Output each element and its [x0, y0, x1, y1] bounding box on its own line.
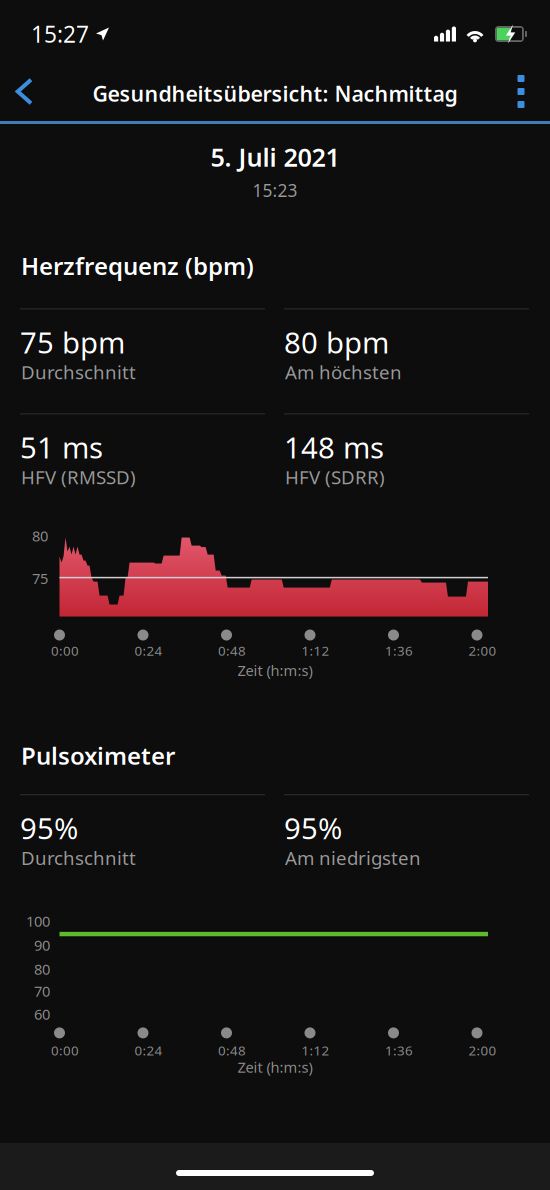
staticText: Herzfrequenz (bpm) [21, 250, 254, 282]
staticText: 0:00 [51, 1042, 79, 1059]
staticText: 1:12 [301, 1042, 329, 1059]
staticText: 15:23 [252, 179, 297, 202]
staticText: 100 [26, 911, 50, 931]
staticText: 80 bpm [284, 322, 389, 361]
staticText: Zeit (h:m:s) [237, 1057, 312, 1077]
staticText: 2:00 [468, 642, 496, 659]
staticText: 1:36 [385, 1042, 413, 1059]
staticText: Durchschnitt [21, 845, 136, 870]
staticText: 1:12 [301, 642, 329, 659]
staticText: 15:27 [31, 19, 89, 49]
staticText: 0:24 [134, 642, 162, 659]
staticText: 75 bpm [20, 322, 125, 361]
staticText: 5. Juli 2021 [210, 140, 339, 174]
staticText: 0:48 [218, 642, 246, 659]
staticText: 0:24 [134, 1042, 162, 1059]
staticText: 0:00 [51, 642, 79, 659]
staticText: 80 [32, 526, 48, 545]
staticText: Gesundheitsübersicht: Nachmittag [92, 79, 457, 108]
staticText: Pulsoximeter [21, 739, 175, 771]
staticText: 148 ms [284, 427, 384, 466]
staticText: Durchschnitt [21, 359, 136, 384]
staticText: Zeit (h:m:s) [237, 660, 312, 680]
button[interactable]: Zurück [0, 62, 53, 121]
staticText: 95% [20, 808, 78, 847]
staticText: 90 [34, 935, 50, 955]
staticText: 60 [34, 1004, 50, 1024]
staticText: 80 [34, 959, 50, 979]
staticText: Am niedrigsten [285, 845, 421, 870]
staticText: 75 [32, 568, 48, 588]
staticText: 0:48 [218, 1042, 246, 1059]
staticText: Am höchsten [285, 359, 402, 384]
staticText: 51 ms [20, 427, 103, 466]
staticText: 70 [34, 981, 50, 1001]
staticText: HFV (RMSSD) [21, 464, 136, 489]
staticText: 95% [284, 808, 342, 847]
staticText: 1:36 [385, 642, 413, 659]
staticText: 2:00 [468, 1042, 496, 1059]
staticText: HFV (SDRR) [285, 464, 385, 489]
button[interactable]: Weitere Optionen [490, 62, 550, 121]
